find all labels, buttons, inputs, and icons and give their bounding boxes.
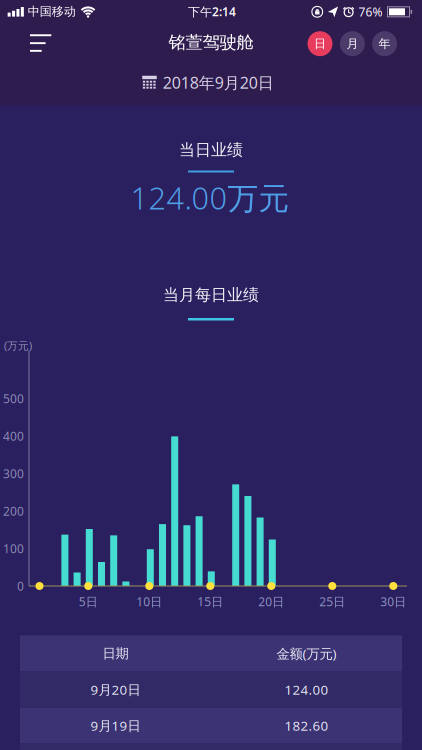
staticText: 0: [17, 578, 24, 594]
staticText: 100: [3, 540, 24, 556]
staticText: 400: [3, 428, 24, 444]
staticText: 年: [379, 36, 391, 51]
staticText: 182.60: [284, 717, 328, 734]
staticText: (万元): [4, 338, 32, 353]
staticText: 200: [3, 503, 24, 519]
staticText: 300: [3, 465, 24, 481]
staticText: 中国移动: [28, 4, 76, 19]
staticText: 10日: [136, 593, 162, 609]
staticText: 25日: [319, 593, 345, 609]
staticText: 9月20日: [90, 681, 140, 698]
staticText: 124.00: [284, 681, 328, 698]
staticText: 日期: [102, 645, 128, 662]
staticText: 日: [314, 36, 326, 51]
staticText: 2018年9月20日: [163, 72, 274, 93]
staticText: 76%: [358, 4, 382, 20]
staticText: 铭萱驾驶舱: [168, 32, 253, 53]
staticText: 5日: [79, 593, 98, 609]
staticText: 当日业绩: [179, 140, 243, 160]
staticText: 金额(万元): [276, 645, 336, 662]
staticText: 9月19日: [90, 717, 140, 734]
staticText: 20日: [258, 593, 284, 609]
staticText: 15日: [197, 593, 223, 609]
staticText: 当月每日业绩: [163, 285, 259, 305]
staticText: 500: [3, 390, 24, 406]
staticText: 30日: [380, 593, 406, 609]
staticText: 月: [346, 36, 358, 51]
staticText: 下午2:14: [188, 3, 236, 19]
staticText: 124.00万元: [130, 177, 289, 218]
